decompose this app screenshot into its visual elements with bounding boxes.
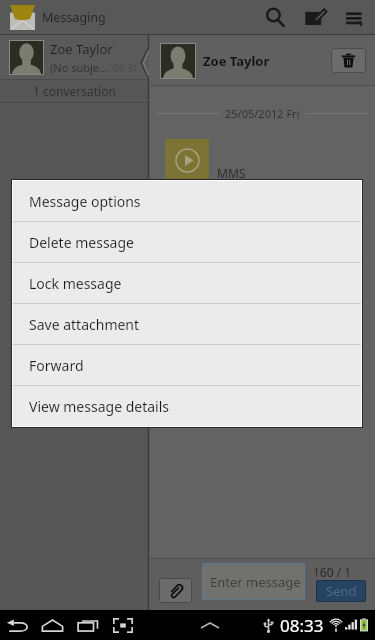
button[interactable]: New message (295, 0, 335, 35)
staticText: Message options (29, 192, 141, 211)
button[interactable]: More options (335, 0, 373, 35)
staticText: Send (326, 582, 357, 600)
staticText: View message details (29, 397, 170, 416)
staticText: 08:31 (113, 61, 139, 75)
button[interactable]: Delete message (13, 222, 361, 262)
button[interactable]: Message options (13, 181, 361, 221)
button[interactable]: Zoe Taylor (0, 35, 149, 79)
staticText: 08:33 (280, 614, 324, 637)
button[interactable]: Lock message (13, 263, 361, 303)
staticText: Lock message (29, 274, 122, 293)
button[interactable]: Attach (159, 578, 192, 603)
button[interactable]: Send (316, 580, 366, 602)
staticText: Enter message (210, 573, 301, 591)
staticText: Zoe Taylor (50, 40, 113, 58)
button[interactable]: Play attachment (165, 139, 209, 181)
button[interactable]: Screenshot (105, 610, 140, 640)
button[interactable]: Enter message (202, 563, 305, 600)
staticText: Delete message (29, 233, 134, 252)
staticText: Save attachment (29, 315, 140, 334)
button[interactable]: Expand (198, 610, 222, 640)
staticText: (No subje... (50, 60, 108, 75)
button[interactable]: Back (0, 610, 35, 640)
staticText: Zoe Taylor (203, 52, 270, 70)
button[interactable]: Home (35, 610, 70, 640)
staticText: 160 / 1 (313, 564, 352, 580)
button[interactable]: Forward (13, 345, 361, 385)
staticText: 25/05/2012 Fri (225, 106, 300, 121)
staticText: MMS (217, 165, 246, 181)
button[interactable]: Search (255, 0, 295, 35)
staticText: Messaging (42, 9, 106, 26)
button[interactable]: Save attachment (13, 304, 361, 344)
staticText: Forward (29, 356, 84, 375)
button[interactable]: Delete (331, 48, 366, 73)
staticText: 1 conversation (33, 83, 116, 99)
button[interactable]: View message details (13, 386, 361, 426)
button[interactable]: Recent apps (70, 610, 105, 640)
